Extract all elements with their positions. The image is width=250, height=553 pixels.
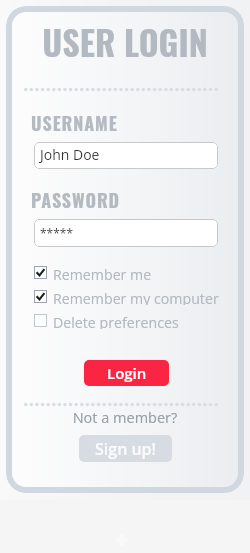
button[interactable]: Login — [84, 360, 169, 386]
staticText: USER LOGIN — [0, 16, 250, 66]
staticText: Not a member? — [0, 408, 250, 428]
staticText: Sign up! — [95, 438, 156, 460]
button[interactable]: Delete preferences — [34, 314, 224, 330]
button[interactable]: Remember my computer — [34, 290, 224, 306]
staticText: Login — [107, 363, 147, 383]
button[interactable]: ***** — [34, 219, 218, 247]
button[interactable]: Sign up! — [79, 435, 172, 462]
staticText: John Doe — [40, 145, 100, 164]
staticText: USERNAME — [31, 110, 118, 137]
staticText: PASSWORD — [31, 187, 121, 214]
staticText: ***** — [40, 225, 74, 241]
staticText: Remember me — [53, 265, 152, 281]
button[interactable]: Remember me — [34, 266, 224, 282]
staticText: Delete preferences — [53, 313, 179, 329]
button[interactable]: John Doe — [34, 142, 218, 169]
staticText: Remember my computer — [53, 289, 219, 305]
